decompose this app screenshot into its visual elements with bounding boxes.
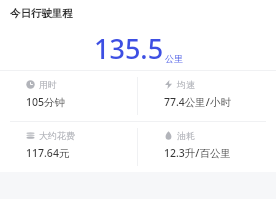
staticText: 大约花费 [39, 130, 75, 141]
other: 均速 [164, 80, 173, 89]
staticText: 今日行驶里程 [10, 7, 73, 20]
button[interactable]: 用时 [0, 71, 137, 121]
staticText: 用时 [39, 79, 57, 90]
staticText: 105分钟 [26, 95, 66, 109]
other: 用时 [26, 80, 35, 89]
other: 油耗 [164, 131, 173, 140]
button[interactable]: 油耗 [138, 122, 276, 172]
other: 大约花费 [26, 131, 35, 140]
staticText: 135.5 [94, 30, 164, 67]
button[interactable]: 均速 [138, 71, 276, 121]
staticText: 117.64元 [26, 146, 70, 160]
staticText: 油耗 [177, 130, 195, 141]
staticText: 公里 [165, 53, 183, 64]
button[interactable]: 大约花费 [0, 122, 137, 172]
staticText: 均速 [177, 79, 195, 90]
staticText: 77.4公里/小时 [164, 95, 231, 109]
staticText: 12.3升/百公里 [164, 146, 231, 160]
